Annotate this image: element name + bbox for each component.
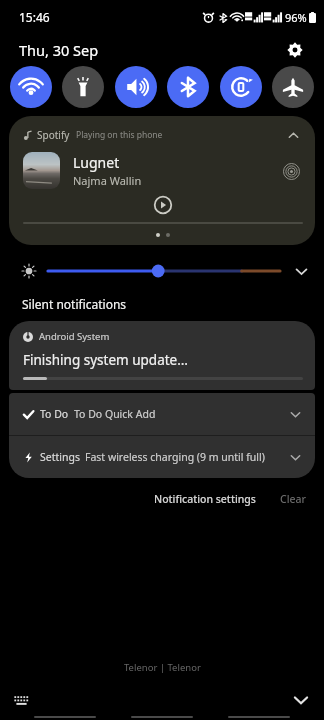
button[interactable]: Sound [115,66,157,108]
button[interactable]: Settings [280,35,310,65]
button[interactable]: Auto rotate [220,66,262,108]
staticText: Thu, 30 Sep [19,40,99,60]
staticText: To Do Quick Add [74,407,156,421]
staticText: Finishing system update… [23,351,188,369]
staticText: Najma Wallin [73,173,142,188]
staticText: 15:46 [19,9,50,25]
button[interactable]: Expand [288,258,314,284]
staticText: Android System [39,330,110,343]
button[interactable]: Flashlight [62,66,104,108]
staticText: Playing on this phone [76,129,163,141]
button[interactable]: Airplane mode [272,66,314,108]
button[interactable]: Collapse shade [286,685,316,715]
button[interactable]: Settings [9,436,315,478]
staticText: To Do [40,407,69,421]
button[interactable]: Play [153,195,173,215]
staticText: Spotify [37,128,70,142]
button[interactable]: Notification settings [148,488,262,510]
staticText: Silent notifications [22,296,127,312]
button[interactable] [48,262,280,280]
staticText: Fast wireless charging (9 m until full) [85,450,265,464]
button[interactable]: Expand Settings [285,447,305,467]
button[interactable]: Bluetooth [167,66,209,108]
button[interactable]: Nav button [131,716,193,718]
button[interactable]: Nav button [34,716,96,718]
button[interactable]: Nav button [228,716,290,718]
staticText: Clear [280,492,306,506]
staticText: Settings [40,450,80,464]
button[interactable]: Collapse [283,125,303,145]
button[interactable]: Spotify [9,116,315,245]
staticText: Notification settings [154,492,256,506]
button[interactable]: Keyboard [8,687,34,713]
button[interactable]: Android System [9,321,315,390]
staticText: 96% [285,10,307,25]
staticText: Lugnet [73,153,120,172]
staticText: Telenor | Telenor [124,661,201,674]
button[interactable]: Expand To Do [285,404,305,424]
button[interactable]: Clear [276,488,310,510]
button[interactable]: Wi-Fi [10,66,52,108]
button[interactable]: Brightness [18,260,40,282]
button[interactable]: To Do [9,393,315,435]
button[interactable]: Output switcher [279,159,303,183]
